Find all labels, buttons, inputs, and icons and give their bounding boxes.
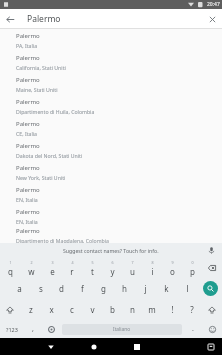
button[interactable]: 4 (62, 257, 82, 278)
staticText: s (39, 283, 43, 294)
staticText: j (144, 283, 147, 294)
button[interactable]: j (135, 278, 156, 299)
staticText: Italiano (113, 326, 131, 333)
button[interactable]: d (51, 278, 72, 299)
button[interactable]: Voice input (205, 244, 217, 256)
staticText: c (70, 304, 74, 315)
button[interactable]: Emoji (202, 320, 222, 338)
button[interactable]: ? (182, 299, 202, 320)
button[interactable]: ! (162, 299, 182, 320)
button[interactable]: Settings (42, 320, 60, 338)
staticText: t (91, 266, 94, 277)
button[interactable]: Palermo (0, 95, 222, 117)
button[interactable]: 5 (82, 257, 102, 278)
staticText: f (81, 283, 84, 294)
staticText: ! (171, 304, 174, 315)
staticText: 1 (9, 260, 12, 265)
button[interactable]: , (24, 320, 42, 338)
staticText: y (110, 266, 115, 277)
button[interactable]: Backspace (202, 257, 222, 278)
staticText: PA, Italia (16, 42, 38, 49)
staticText: 9 (171, 260, 174, 265)
staticText: Suggest contact names? Touch for info. (63, 247, 159, 254)
button[interactable]: b (102, 299, 122, 320)
button[interactable]: l (177, 278, 198, 299)
staticText: CE, Italia (16, 130, 38, 137)
staticText: 7 (131, 260, 134, 265)
button[interactable]: Palermo (0, 51, 222, 73)
button[interactable]: 8 (142, 257, 162, 278)
button[interactable]: Palermo (0, 227, 222, 243)
button[interactable]: s (30, 278, 51, 299)
button[interactable]: k (156, 278, 177, 299)
staticText: h (122, 283, 127, 294)
staticText: a (17, 283, 22, 294)
button[interactable]: ?123 (0, 320, 24, 338)
staticText: 3 (51, 260, 54, 265)
button[interactable]: Recents (128, 338, 145, 355)
button[interactable]: 9 (162, 257, 182, 278)
staticText: u (130, 266, 135, 277)
button[interactable]: n (122, 299, 142, 320)
button[interactable]: g (93, 278, 114, 299)
button[interactable]: a (9, 278, 30, 299)
staticText: b (110, 304, 115, 315)
staticText: e (50, 266, 55, 277)
staticText: w (28, 266, 35, 277)
button[interactable]: Palermo (0, 161, 222, 183)
staticText: . (192, 324, 194, 334)
staticText: Dipartimento di Huila, Colombia (16, 108, 95, 115)
button[interactable]: Palermo (0, 117, 222, 139)
button[interactable]: Back (42, 338, 59, 355)
staticText: 20:47 (207, 1, 220, 8)
staticText: Palermo (16, 142, 40, 150)
staticText: Dipartimento di Magdalena, Colombia (16, 237, 110, 243)
staticText: 4 (71, 260, 74, 265)
staticText: 0 (191, 260, 194, 265)
staticText: California, Stati Uniti (16, 64, 66, 71)
button[interactable]: h (114, 278, 135, 299)
button[interactable]: 3 (42, 257, 62, 278)
staticText: g (101, 283, 106, 294)
staticText: l (186, 283, 189, 294)
button[interactable]: Home (85, 338, 102, 355)
button[interactable]: Clear (202, 9, 222, 29)
staticText: ?123 (6, 326, 18, 333)
button[interactable]: Palermo (0, 29, 222, 51)
button[interactable]: Palermo (0, 73, 222, 95)
button[interactable]: 1 (0, 257, 21, 278)
staticText: Palermo (16, 76, 40, 84)
staticText: z (29, 304, 33, 315)
button[interactable]: Hide keyboard (202, 338, 219, 355)
button[interactable]: Suggest contact names? Touch for info. (0, 243, 222, 257)
button[interactable]: 6 (102, 257, 122, 278)
staticText: Palermo (16, 186, 40, 194)
staticText: d (59, 283, 64, 294)
staticText: Palermo (16, 54, 40, 62)
button[interactable]: x (41, 299, 62, 320)
button[interactable]: Italiano (62, 324, 182, 335)
button[interactable]: 2 (21, 257, 42, 278)
staticText: Palermo (16, 227, 40, 235)
button[interactable]: Shift (0, 299, 20, 320)
button[interactable]: c (62, 299, 82, 320)
button[interactable]: Back (0, 9, 20, 29)
staticText: 6 (111, 260, 114, 265)
button[interactable]: f (72, 278, 93, 299)
button[interactable]: Shift right (202, 299, 222, 320)
button[interactable]: m (142, 299, 162, 320)
button[interactable]: Search (198, 278, 222, 299)
button[interactable]: 0 (182, 257, 202, 278)
button[interactable]: 7 (122, 257, 142, 278)
staticText: Palermo (16, 32, 40, 40)
staticText: Palermo (16, 98, 40, 106)
staticText: Palermo (27, 13, 61, 25)
staticText: 2 (30, 260, 33, 265)
button[interactable]: v (82, 299, 102, 320)
button[interactable]: Palermo (0, 205, 222, 227)
button[interactable]: z (20, 299, 41, 320)
button[interactable]: . (184, 320, 202, 338)
staticText: r (70, 266, 74, 277)
button[interactable]: Palermo (0, 183, 222, 205)
button[interactable]: Palermo (0, 139, 222, 161)
